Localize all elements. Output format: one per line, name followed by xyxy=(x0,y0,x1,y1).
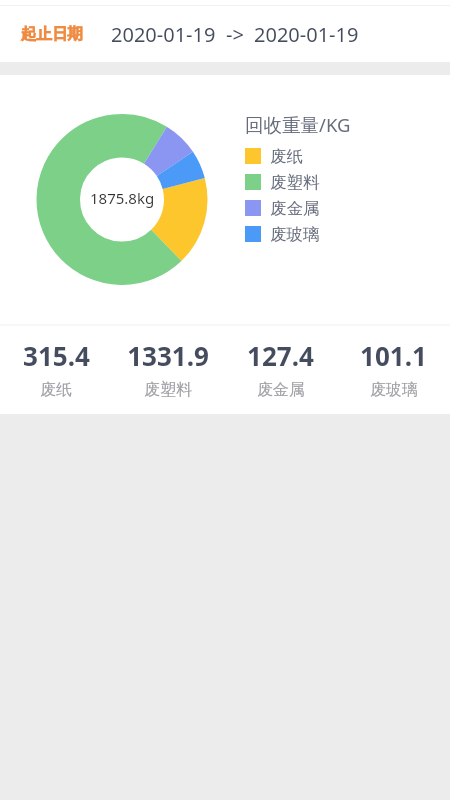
button[interactable]: 废塑料 xyxy=(245,169,320,195)
staticText: 1875.8kg xyxy=(90,188,155,208)
staticText: 废纸 xyxy=(40,380,72,400)
button[interactable]: 127.4 xyxy=(224,338,337,400)
button[interactable]: 废纸 xyxy=(245,143,303,169)
staticText: -> xyxy=(226,21,244,48)
staticText: 废塑料 xyxy=(270,172,320,193)
staticText: 废金属 xyxy=(270,198,320,219)
staticText: 废玻璃 xyxy=(270,224,320,245)
staticText: 废金属 xyxy=(257,380,305,400)
button[interactable]: 废金属 xyxy=(245,195,320,221)
staticText: 废纸 xyxy=(270,146,303,167)
staticText: 废玻璃 xyxy=(370,380,418,400)
staticText: 2020-01-19 xyxy=(111,21,216,48)
button[interactable]: 315.4 xyxy=(0,338,112,400)
staticText: 回收重量/KG xyxy=(245,112,351,137)
staticText: 2020-01-19 xyxy=(254,21,359,48)
staticText: 127.4 xyxy=(247,338,314,373)
staticText: 1331.9 xyxy=(127,338,209,373)
staticText: 起止日期 xyxy=(21,24,83,44)
staticText: 101.1 xyxy=(360,338,427,373)
button[interactable]: 1331.9 xyxy=(112,338,224,400)
button[interactable]: 起止日期 xyxy=(0,6,450,62)
staticText: 315.4 xyxy=(23,338,90,373)
button[interactable]: 101.1 xyxy=(337,338,450,400)
other: 回收重量饼图 xyxy=(0,75,450,324)
button[interactable]: 废玻璃 xyxy=(245,221,320,247)
staticText: 废塑料 xyxy=(144,380,192,400)
